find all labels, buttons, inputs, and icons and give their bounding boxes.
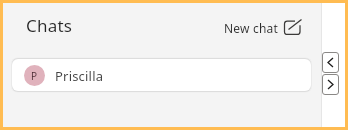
staticText: P (31, 69, 38, 83)
other: New chat (283, 18, 302, 35)
staticText: New chat (224, 20, 279, 36)
button[interactable]: P (12, 59, 311, 91)
button[interactable]: New chat (220, 17, 306, 38)
button[interactable]: Previous (322, 52, 339, 73)
staticText: Chats (26, 14, 73, 37)
button[interactable]: Next (322, 74, 339, 95)
staticText: Priscilla (55, 67, 104, 85)
